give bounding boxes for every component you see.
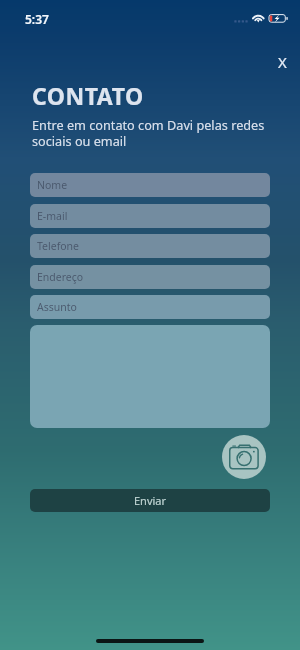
- button[interactable]: E-mail: [30, 204, 270, 228]
- staticText: Assunto: [37, 300, 77, 314]
- button[interactable]: Nome: [30, 173, 270, 197]
- button[interactable]: Endereço: [30, 265, 270, 289]
- button[interactable]: Telefone: [30, 234, 270, 258]
- button[interactable]: Assunto: [30, 295, 270, 319]
- button[interactable]: Close: [268, 48, 296, 76]
- button[interactable]: [30, 325, 270, 428]
- staticText: Nome: [37, 178, 68, 192]
- staticText: CONTATO: [32, 80, 144, 111]
- staticText: 5:37: [25, 11, 49, 27]
- staticText: E-mail: [37, 209, 68, 223]
- staticText: Telefone: [37, 239, 80, 253]
- staticText: Enviar: [134, 493, 167, 508]
- button[interactable]: Enviar: [30, 489, 270, 512]
- staticText: Entre em contato com Davi pelas redes so…: [32, 116, 274, 149]
- staticText: Endereço: [37, 270, 84, 284]
- staticText: X: [278, 52, 287, 72]
- button[interactable]: Take photo: [222, 435, 266, 479]
